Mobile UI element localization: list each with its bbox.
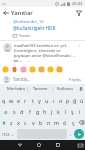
staticText: ö [63,119,67,126]
button[interactable]: x [15,117,22,128]
button[interactable]: n [45,117,53,128]
button[interactable]: z [8,117,15,128]
button[interactable]: k [55,106,62,117]
button[interactable]: d [18,106,26,117]
button[interactable]: Send [74,129,84,139]
staticText: ?123 [2,132,10,137]
staticText: b [39,119,43,126]
staticText: k [57,108,60,115]
staticText: @kullanicigelir HDR [13,25,56,31]
button[interactable]: , [10,129,16,139]
button[interactable]: q [0,95,8,106]
button[interactable]: Filter [73,7,84,18]
button[interactable]: t [29,95,36,106]
button[interactable]: v [29,117,37,128]
staticText: Paylaş [69,77,81,82]
button[interactable]: ü [78,95,85,106]
staticText: Yanıtla [20,60,31,62]
button[interactable]: Switch keyboard [76,140,85,150]
button[interactable]: a [2,106,10,117]
button[interactable]: Emoji [11,66,18,73]
staticText: ç [72,119,75,126]
button[interactable]: Shift [0,117,8,128]
staticText: Tamam [33,86,48,92]
staticText: 20:43 [72,1,83,6]
button[interactable]: e [15,95,22,106]
button[interactable]: Emoji [20,66,27,73]
button[interactable]: Emoji [29,66,36,73]
staticText: f [29,108,31,115]
button[interactable]: Backspace [77,117,85,128]
staticText: e [17,97,21,104]
staticText: g [36,108,40,115]
button[interactable]: h [41,106,48,117]
staticText: t [32,97,34,104]
button[interactable]: c [22,117,29,128]
staticText: v [32,119,35,126]
button[interactable]: ?123 [1,129,10,139]
button[interactable]: p [64,95,71,106]
button[interactable]: Paylaş [68,77,82,82]
button[interactable]: r [22,95,29,106]
button[interactable]: Merhaba [4,84,27,94]
button[interactable]: ç [69,117,77,128]
staticText: w [9,97,14,104]
button[interactable]: ğ [71,95,78,106]
button[interactable]: j [48,106,55,117]
staticText: . [70,131,72,138]
button[interactable]: u [43,95,50,106]
staticText: Yanıtla [19,33,30,38]
button[interactable]: Emoji [2,66,9,73]
button[interactable]: Yanıtla... [13,76,68,82]
staticText: z [10,119,13,126]
button[interactable]: b [37,117,45,128]
button[interactable]: Back [0,7,11,18]
button[interactable]: w [8,95,15,106]
button[interactable]: Emoji [56,66,63,73]
staticText: m [54,119,60,126]
button[interactable]: Recents [48,140,67,150]
staticText: h [43,108,47,115]
button[interactable]: ö [61,117,69,128]
button[interactable]: m [53,117,61,128]
staticText: u [45,97,49,104]
button[interactable]: s [10,106,18,117]
staticText: Yanıtla... [13,76,31,82]
button[interactable]: o [57,95,64,106]
button[interactable]: g [34,106,41,117]
button[interactable]: Emoji [47,66,54,73]
staticText: x [17,119,20,126]
button[interactable]: ş [69,106,76,117]
button[interactable]: y [36,95,43,106]
staticText: ğ [73,97,77,104]
button[interactable]: Back [10,140,29,150]
staticText: Merhaba [7,86,25,92]
staticText: madhat003 kendinizi en çok hissettiğiniz… [14,43,77,58]
button[interactable]: l [62,106,69,117]
staticText: ş [71,108,74,115]
button[interactable]: f [26,106,34,117]
staticText: r [24,97,27,104]
button[interactable]: Emoji [38,66,45,73]
button[interactable]: i [76,106,83,117]
button[interactable]: . [68,129,74,139]
staticText: @kullanicibir_12 [13,19,44,24]
button[interactable]: Home [29,140,48,150]
staticText: c [24,119,27,126]
staticText: i [79,108,81,115]
staticText: Yanıtlar [11,9,33,17]
staticText: ü [80,97,84,104]
staticText: ı [53,97,55,104]
button[interactable]: ı [50,95,57,106]
button[interactable]: Voice input [77,84,85,94]
button[interactable]: Tamam [28,84,52,94]
button[interactable]: More [77,43,82,48]
staticText: l [65,108,67,115]
staticText: Kullanıcı [57,86,74,92]
staticText: y [38,97,41,104]
staticText: , [12,131,14,138]
staticText: q [2,97,6,104]
staticText: a [4,108,8,115]
button[interactable]: Kullanıcı [53,84,77,94]
